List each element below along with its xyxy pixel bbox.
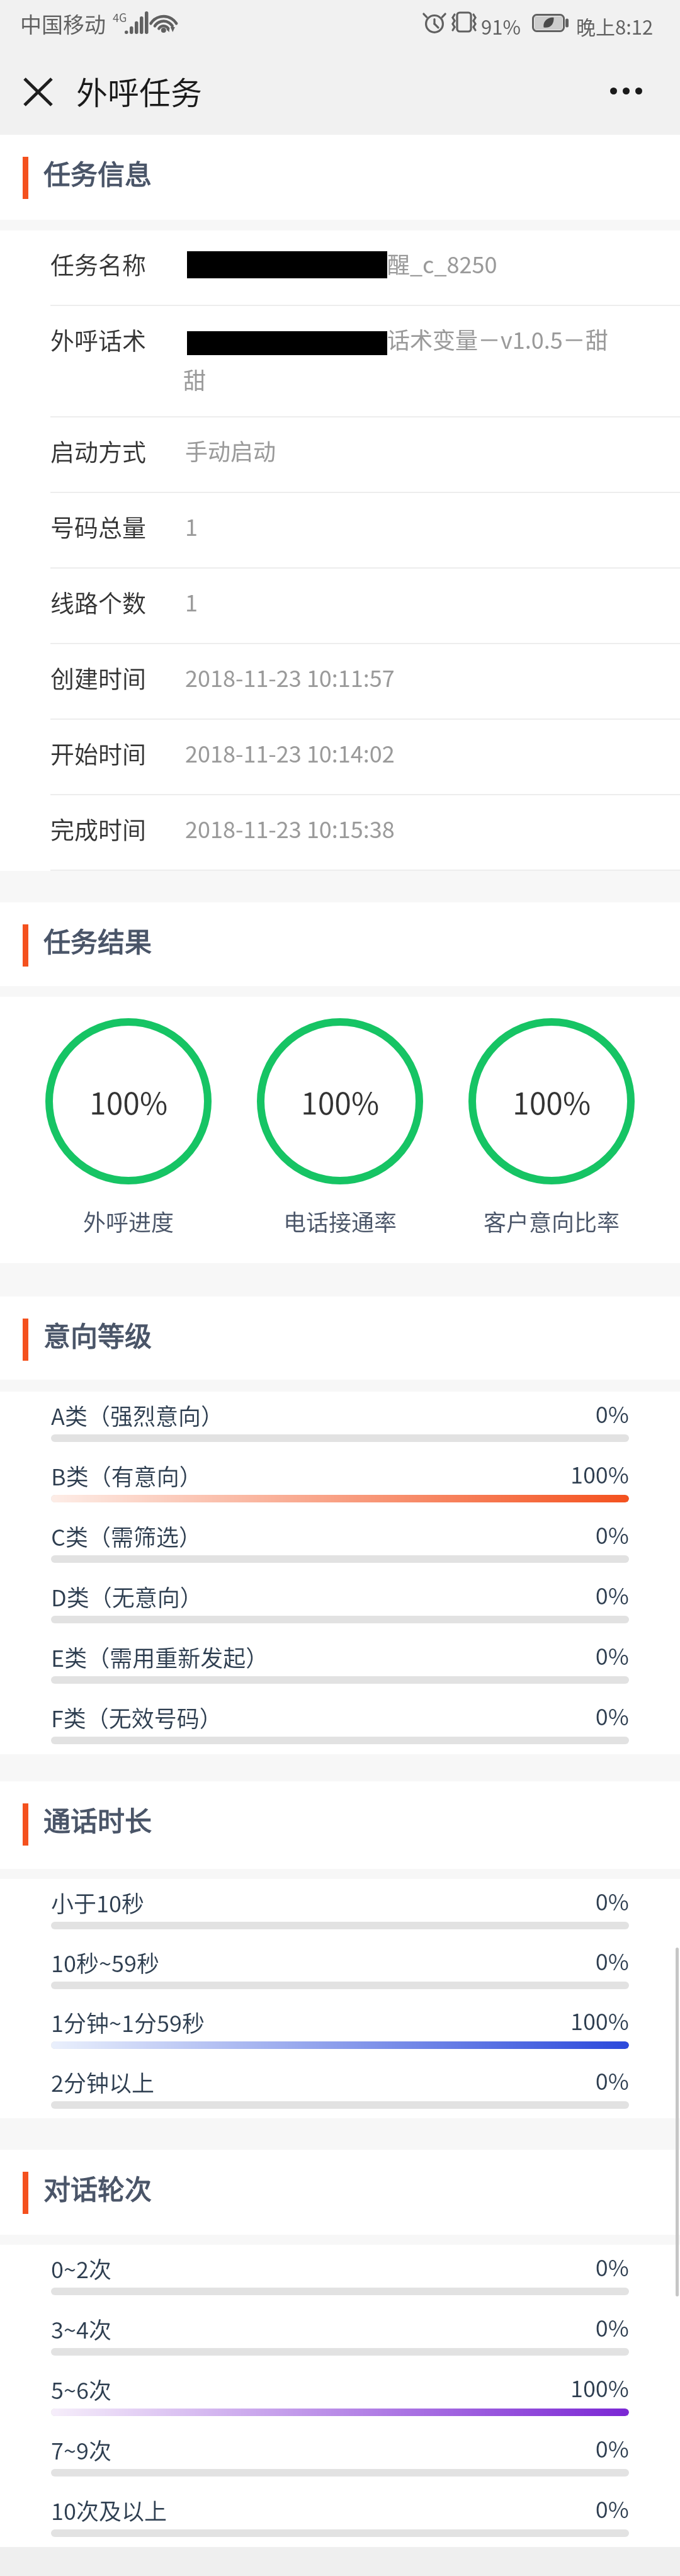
staticText: 任务信息 [43, 153, 152, 192]
staticText: E类（需用重新发起） [51, 1640, 269, 1673]
button[interactable]: 线路个数 [0, 569, 680, 644]
staticText: 醒_c_8250 [387, 247, 497, 280]
staticText: 4G [113, 9, 127, 25]
staticText: 100% [301, 1079, 380, 1123]
staticText: 0% [378, 1397, 629, 1429]
staticText: 开始时间 [50, 735, 147, 770]
staticText: 7~9次 [51, 2433, 111, 2466]
staticText: 电话接通率 [283, 1205, 397, 1237]
staticText: 100% [513, 1079, 591, 1123]
staticText: 任务结果 [43, 921, 152, 960]
staticText: 任务名称 [50, 246, 147, 281]
staticText: 0% [378, 2063, 629, 2096]
staticText: 创建时间 [50, 660, 147, 695]
button[interactable]: 0~2次 [0, 2245, 680, 2305]
staticText: 0% [378, 2310, 629, 2343]
staticText: 完成时间 [50, 811, 147, 846]
staticText: 中国移动 [20, 8, 106, 39]
button[interactable]: 创建时间 [0, 644, 680, 720]
button[interactable]: 任务名称 [0, 230, 680, 306]
staticText: 0% [378, 1699, 629, 1732]
button[interactable]: 启动方式 [0, 417, 680, 493]
staticText: 100% [89, 1079, 168, 1123]
button[interactable]: 完成时间 [0, 795, 680, 871]
staticText: 客户意向比率 [484, 1205, 620, 1237]
button[interactable]: F类（无效号码） [0, 1694, 680, 1754]
staticText: 100% [378, 1457, 629, 1490]
staticText: 3~4次 [51, 2312, 111, 2345]
staticText: 小于10秒 [51, 1886, 144, 1919]
staticText: 91% [481, 12, 521, 40]
staticText: 0% [378, 1638, 629, 1671]
staticText: 外呼任务 [76, 68, 202, 113]
staticText: 1 [185, 585, 198, 618]
staticText: 0% [378, 2492, 629, 2524]
staticText: 2018-11-23 10:14:02 [185, 736, 395, 769]
staticText: 0% [378, 2431, 629, 2464]
staticText: 意向等级 [43, 1315, 152, 1354]
staticText: 2分钟以上 [51, 2065, 154, 2098]
staticText: 话术变量－v1.0.5－甜 [387, 322, 608, 355]
button[interactable]: D类（无意向） [0, 1573, 680, 1633]
staticText: 号码总量 [50, 509, 147, 543]
button[interactable]: B类（有意向） [0, 1452, 680, 1512]
button[interactable]: Close [18, 72, 58, 112]
staticText: D类（无意向） [51, 1580, 203, 1613]
staticText: 10次及以上 [51, 2494, 167, 2526]
staticText: C类（需筛选） [51, 1519, 201, 1552]
staticText: 100% [378, 2371, 629, 2403]
button[interactable]: More options [594, 71, 657, 110]
button[interactable]: A类（强烈意向） [0, 1392, 680, 1452]
staticText: 启动方式 [50, 433, 147, 468]
button[interactable]: 外呼话术 [0, 306, 680, 417]
staticText: 0% [378, 1518, 629, 1550]
staticText: 手动启动 [185, 434, 276, 467]
staticText: B类（有意向） [51, 1459, 202, 1492]
staticText: 2018-11-23 10:15:38 [185, 812, 395, 844]
staticText: 外呼进度 [83, 1205, 174, 1237]
staticText: 通话时长 [43, 1800, 152, 1839]
staticText: 10秒~59秒 [51, 1946, 159, 1978]
button[interactable]: 10次及以上 [0, 2487, 680, 2547]
staticText: 2018-11-23 10:11:57 [185, 661, 395, 693]
staticText: F类（无效号码） [51, 1701, 222, 1733]
staticText: 晚上8:12 [576, 12, 654, 40]
button[interactable]: 2分钟以上 [0, 2058, 680, 2118]
button[interactable]: 号码总量 [0, 493, 680, 569]
staticText: 0% [378, 1884, 629, 1917]
staticText: 0% [378, 1578, 629, 1611]
staticText: 5~6次 [51, 2373, 111, 2405]
button[interactable]: E类（需用重新发起） [0, 1633, 680, 1694]
button[interactable]: 7~9次 [0, 2426, 680, 2487]
staticText: 100% [378, 2004, 629, 2036]
button[interactable]: 小于10秒 [0, 1879, 680, 1939]
staticText: 0% [378, 2250, 629, 2283]
staticText: 线路个数 [50, 584, 147, 619]
button[interactable]: 1分钟~1分59秒 [0, 1999, 680, 2058]
button[interactable]: 5~6次 [0, 2366, 680, 2426]
staticText: 1 [185, 509, 198, 542]
button[interactable]: C类（需筛选） [0, 1512, 680, 1573]
staticText: A类（强烈意向） [51, 1399, 224, 1431]
button[interactable]: 10秒~59秒 [0, 1939, 680, 1999]
button[interactable]: 3~4次 [0, 2305, 680, 2366]
staticText: 1分钟~1分59秒 [51, 2006, 205, 2038]
staticText: 0~2次 [51, 2252, 111, 2284]
staticText: 甜 [183, 363, 207, 395]
button[interactable]: 开始时间 [0, 720, 680, 795]
staticText: 对话轮次 [43, 2168, 152, 2207]
staticText: 外呼话术 [50, 322, 147, 356]
staticText: 0% [378, 1944, 629, 1977]
